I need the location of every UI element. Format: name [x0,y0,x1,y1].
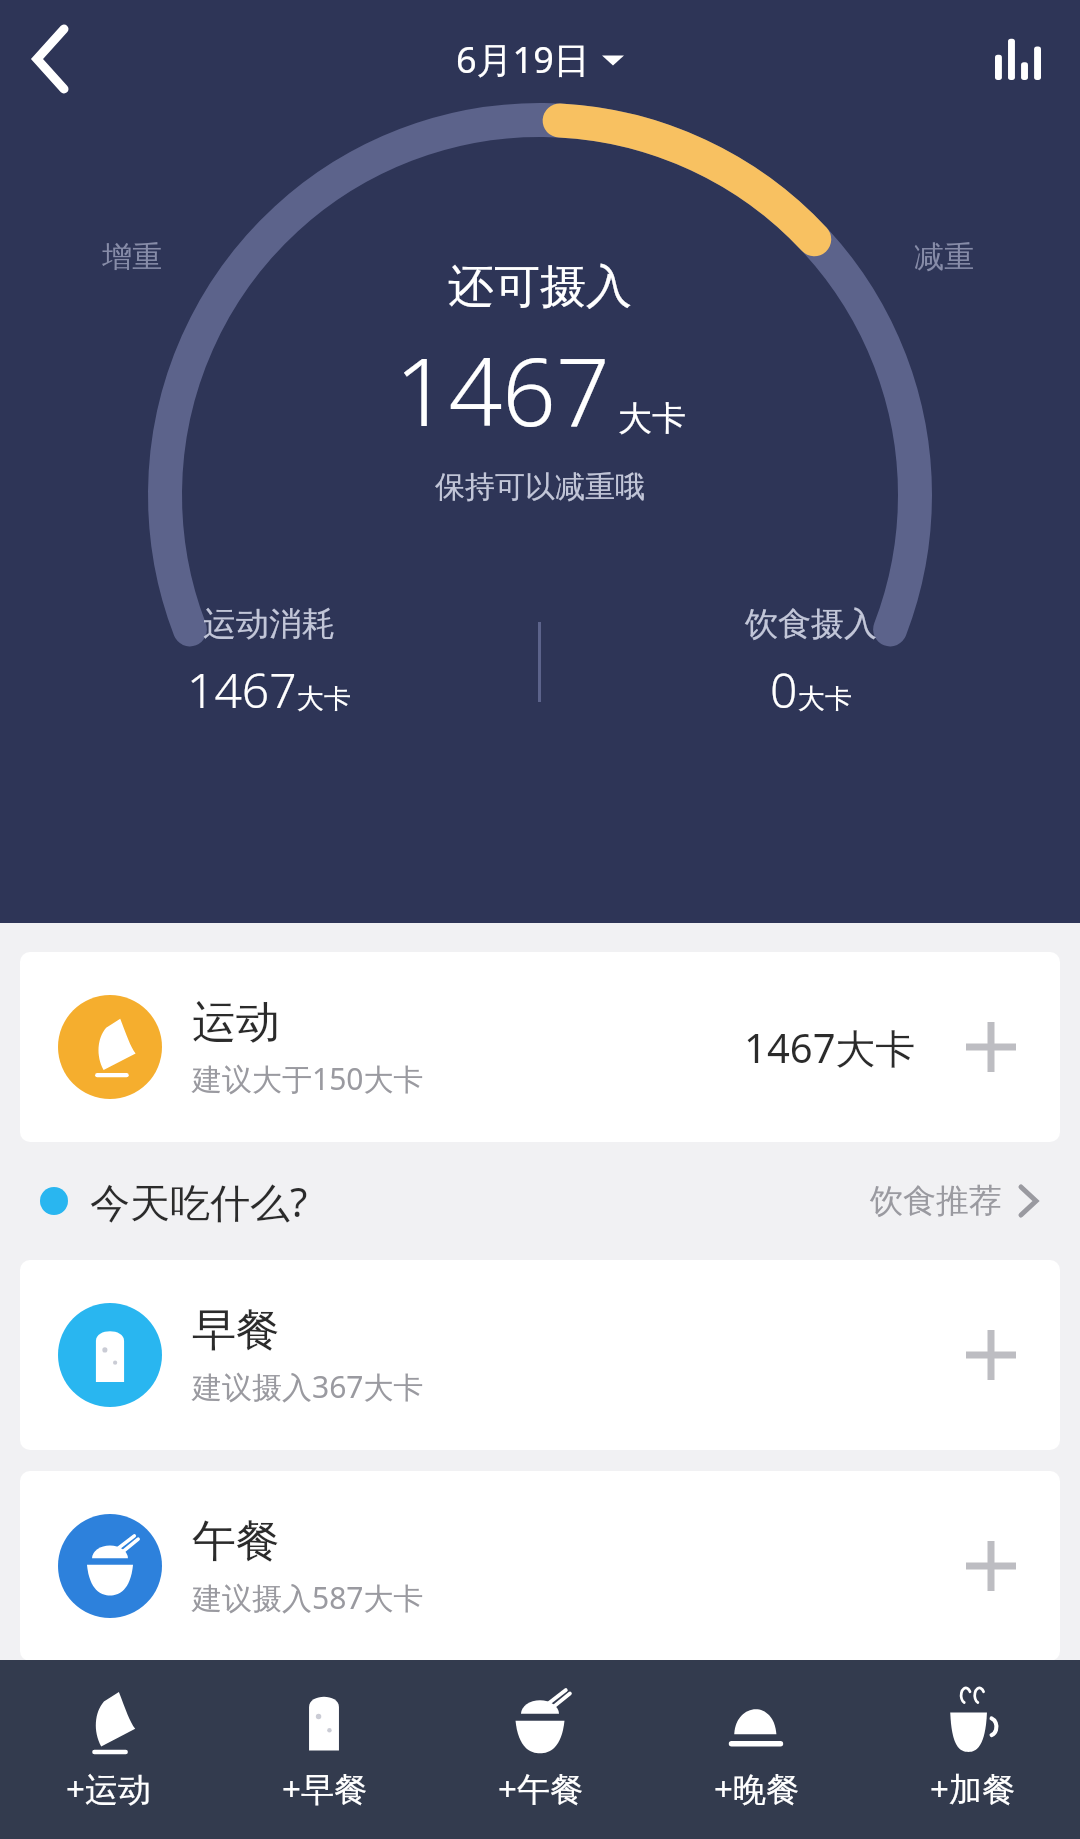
staticText: 1467 [187,657,297,722]
staticText: 建议摄入367大卡 [192,1366,424,1407]
button[interactable]: +早餐 [216,1660,432,1839]
button[interactable]: Statistics [978,19,1058,99]
button[interactable]: 6月19日 [456,35,624,84]
staticText: 大卡 [618,397,686,440]
staticText: 饮食摄入 [745,603,877,645]
button[interactable]: 运动 [20,952,1060,1142]
staticText: 1467大卡 [744,1020,916,1075]
button[interactable]: Add 运动 [958,1014,1024,1080]
staticText: 建议摄入587大卡 [192,1577,424,1618]
button[interactable]: Back [8,17,92,101]
button[interactable]: +加餐 [864,1660,1080,1839]
staticText: 6月19日 [456,35,590,84]
button[interactable]: Add 早餐 [958,1322,1024,1388]
staticText: +加餐 [930,1766,1015,1811]
button[interactable]: Add 午餐 [958,1533,1024,1599]
staticText: 早餐 [192,1303,280,1358]
button[interactable]: +晚餐 [648,1660,864,1839]
staticText: 大卡 [297,682,351,716]
staticText: 建议大于150大卡 [192,1058,424,1099]
staticText: +早餐 [282,1766,367,1811]
button[interactable]: 今天吃什么? [40,1142,1040,1260]
staticText: 饮食推荐 [870,1180,1002,1222]
staticText: 减重 [914,238,974,276]
button[interactable]: 早餐 [20,1260,1060,1450]
staticText: 运动 [192,995,280,1050]
staticText: 午餐 [192,1514,280,1569]
staticText: +晚餐 [714,1766,799,1811]
staticText: 保持可以减重哦 [435,468,645,506]
staticText: 运动消耗 [203,603,335,645]
staticText: 增重 [102,238,162,276]
button[interactable]: +运动 [0,1660,216,1839]
staticText: 大卡 [798,682,852,716]
staticText: +运动 [66,1766,151,1811]
staticText: 1467 [395,326,610,454]
button[interactable]: +午餐 [432,1660,648,1839]
staticText: +午餐 [498,1766,583,1811]
staticText: 今天吃什么? [90,1174,308,1229]
staticText: 还可摄入 [448,258,632,316]
button[interactable]: 午餐 [20,1471,1060,1661]
staticText: 0 [770,657,798,722]
